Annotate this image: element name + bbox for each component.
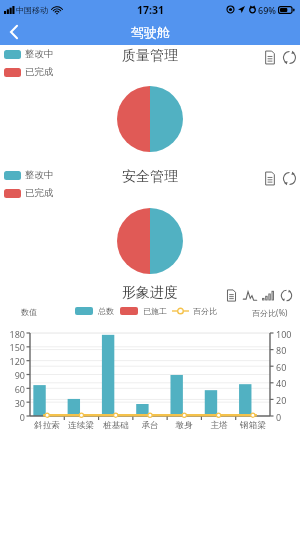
staticText: 墩身 <box>166 420 202 431</box>
staticText: 0 <box>0 411 25 423</box>
button[interactable]: Back <box>0 19 28 45</box>
staticText: 数值 <box>21 307 37 317</box>
button[interactable]: Report <box>225 289 238 302</box>
staticText: 17:31 <box>137 3 164 17</box>
staticText: 0 <box>276 411 282 423</box>
staticText: 整改中 <box>25 169 54 181</box>
staticText: 承台 <box>132 420 168 431</box>
button[interactable]: Refresh <box>282 50 297 65</box>
staticText: 连续梁 <box>63 420 99 431</box>
staticText: 驾驶舱 <box>131 24 170 40</box>
staticText: 百分比 <box>193 306 217 316</box>
staticText: 安全管理 <box>0 168 300 186</box>
staticText: 中国移动 <box>16 5 48 15</box>
staticText: 69% <box>258 4 276 16</box>
staticText: 质量管理 <box>0 47 300 65</box>
staticText: 180 <box>0 328 25 340</box>
button[interactable]: Bar chart <box>261 289 275 302</box>
staticText: 桩基础 <box>98 420 134 431</box>
staticText: 100 <box>276 328 292 340</box>
button[interactable]: Refresh <box>282 171 297 186</box>
staticText: 80 <box>276 344 287 356</box>
button[interactable]: Refresh <box>279 289 294 302</box>
staticText: 百分比(%) <box>252 307 288 318</box>
staticText: 钢箱梁 <box>235 420 271 431</box>
staticText: 30 <box>0 397 25 409</box>
staticText: 20 <box>276 394 287 406</box>
staticText: 40 <box>276 377 287 389</box>
staticText: 已施工 <box>143 306 167 316</box>
staticText: 已完成 <box>25 66 54 78</box>
staticText: 主塔 <box>201 420 237 431</box>
staticText: 整改中 <box>25 48 54 60</box>
staticText: 120 <box>0 355 25 367</box>
staticText: 已完成 <box>25 187 54 199</box>
staticText: 60 <box>0 383 25 395</box>
button[interactable]: Report <box>263 171 277 186</box>
staticText: 60 <box>276 361 287 373</box>
staticText: 150 <box>0 341 25 353</box>
staticText: 总数 <box>98 306 114 316</box>
staticText: 90 <box>0 369 25 381</box>
staticText: 斜拉索 <box>29 420 65 431</box>
staticText: 形象进度 <box>0 284 300 302</box>
button[interactable]: Line chart <box>243 289 257 302</box>
button[interactable]: Report <box>263 50 277 65</box>
